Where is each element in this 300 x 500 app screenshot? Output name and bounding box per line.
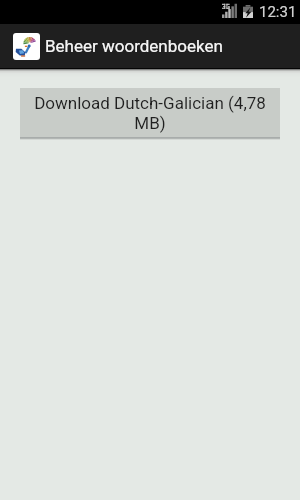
staticText: Beheer woordenboeken [45, 36, 223, 56]
button[interactable]: App icon, navigate up [13, 33, 40, 60]
button[interactable]: Download Dutch-Galician (4,78 MB) [20, 88, 280, 140]
staticText: 12:31 [259, 3, 297, 21]
staticText: Download Dutch-Galician (4,78 MB) [28, 93, 272, 133]
